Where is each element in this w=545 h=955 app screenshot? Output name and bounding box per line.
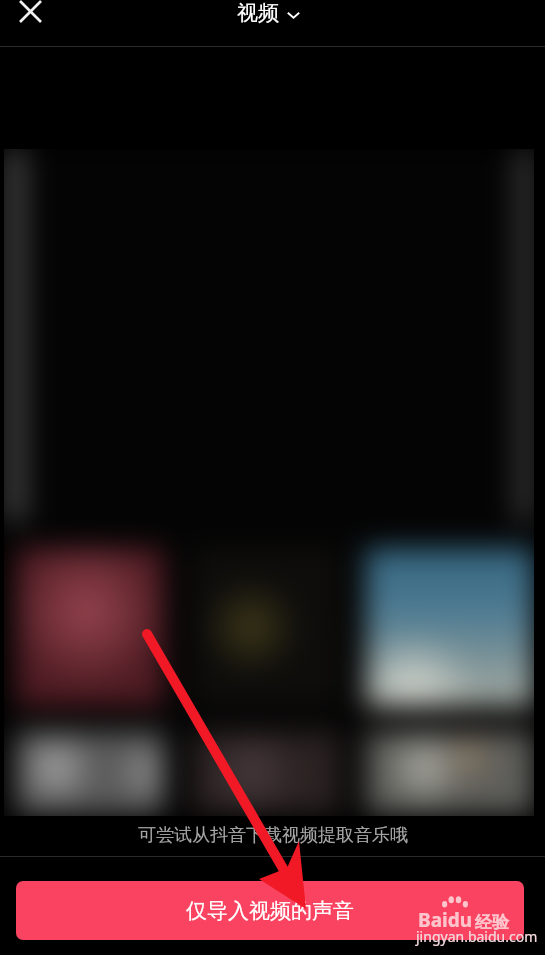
staticText: Baidu — [418, 907, 473, 933]
button[interactable]: 视频 — [237, 0, 300, 26]
staticText: 经验 — [475, 912, 509, 933]
staticText: jingyan.baidu.com — [416, 927, 538, 946]
button[interactable]: 仅导入视频的声音 — [16, 881, 524, 940]
button[interactable]: Close — [9, 0, 52, 22]
staticText: 视频 — [237, 0, 279, 26]
staticText: 可尝试从抖音下载视频提取音乐哦 — [138, 824, 408, 847]
staticText: 仅导入视频的声音 — [186, 898, 354, 924]
